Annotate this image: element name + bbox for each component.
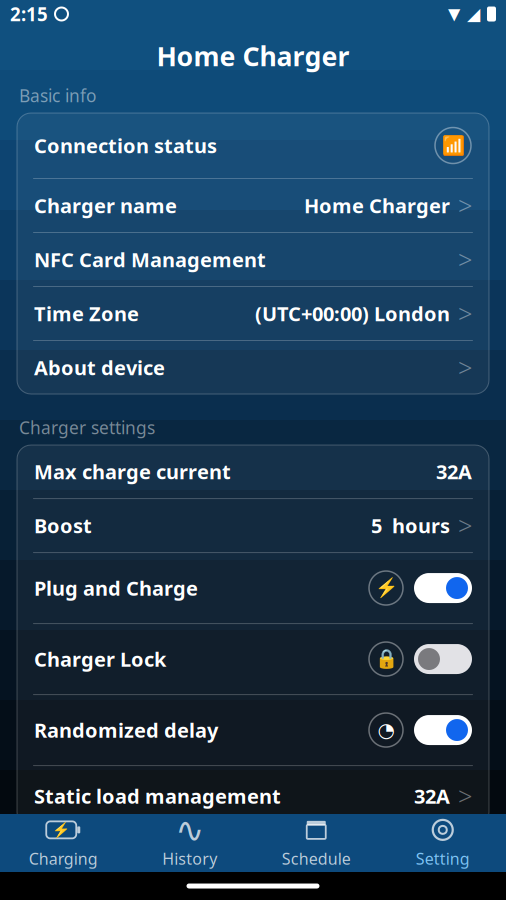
staticText: Charging xyxy=(29,848,98,869)
staticText: Charger name xyxy=(34,192,177,219)
button[interactable]: NFC Card Management xyxy=(17,233,489,286)
staticText: (UTC+00:00) London xyxy=(255,300,450,327)
staticText: Randomized delay xyxy=(34,717,218,743)
staticText: Plug and Charge xyxy=(34,575,198,601)
staticText: NFC Card Management xyxy=(34,246,266,273)
button[interactable]: Charging xyxy=(0,816,126,870)
staticText: > xyxy=(458,243,472,276)
button[interactable]: Boost xyxy=(17,499,489,552)
button[interactable]: Charger name xyxy=(17,179,489,232)
staticText: ⚡ xyxy=(374,577,397,599)
staticText: Static load management xyxy=(34,783,281,809)
staticText: > xyxy=(458,297,472,330)
staticText: Basic info xyxy=(19,84,96,107)
staticText: Home Charger xyxy=(304,192,450,219)
staticText: > xyxy=(458,779,472,813)
button[interactable]: Static load management xyxy=(17,766,489,826)
staticText: ◢ xyxy=(467,4,480,24)
staticText: Connection status xyxy=(34,132,217,159)
staticText: ◔ xyxy=(377,719,394,741)
staticText: > xyxy=(458,351,472,384)
staticText: > xyxy=(458,509,472,542)
button[interactable]: Charger Lock xyxy=(17,624,489,694)
staticText: Max charge current xyxy=(34,458,231,485)
staticText: About device xyxy=(34,354,165,381)
button[interactable]: Schedule xyxy=(253,816,379,870)
staticText: ▼ xyxy=(448,5,460,23)
staticText: Home Charger xyxy=(156,38,349,74)
staticText: 5 hours xyxy=(371,512,450,539)
staticText: Schedule xyxy=(282,848,351,869)
button[interactable]: About device xyxy=(17,341,489,394)
button[interactable]: Randomized delay xyxy=(17,695,489,765)
staticText: Boost xyxy=(34,512,92,539)
button[interactable]: Plug and Charge xyxy=(17,553,489,623)
staticText: 32A xyxy=(414,783,450,809)
staticText: 32A xyxy=(436,458,472,485)
button[interactable]: Setting xyxy=(379,816,506,870)
staticText: ∿ xyxy=(175,810,204,849)
staticText: > xyxy=(458,189,472,222)
staticText: 2:15 xyxy=(10,2,48,26)
button[interactable]: Max charge current xyxy=(17,445,489,498)
staticText: Charger settings xyxy=(19,416,155,439)
staticText: ⚡ xyxy=(52,821,70,838)
button[interactable]: Time Zone xyxy=(17,287,489,340)
staticText: Time Zone xyxy=(34,300,139,327)
staticText: 📶 xyxy=(441,135,464,156)
staticText: Charger Lock xyxy=(34,646,166,672)
staticText: History xyxy=(162,848,217,869)
staticText: Setting xyxy=(416,848,470,869)
staticText: 🔒 xyxy=(374,648,397,670)
button[interactable]: History xyxy=(126,816,253,870)
button[interactable]: Connection status xyxy=(17,113,489,178)
